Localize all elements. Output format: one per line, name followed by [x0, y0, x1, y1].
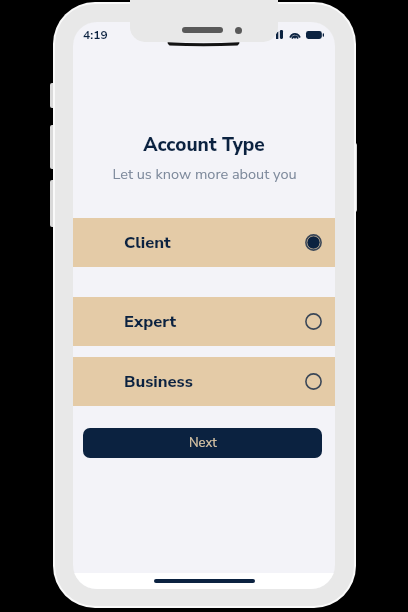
staticText: Expert — [124, 310, 177, 333]
staticText: Let us know more about you — [112, 164, 297, 184]
button[interactable]: Client — [73, 218, 335, 267]
other: Status icons — [276, 30, 324, 39]
button[interactable]: Business — [73, 357, 335, 406]
button[interactable]: Expert — [73, 297, 335, 346]
staticText: Client — [124, 231, 171, 254]
staticText: Business — [124, 370, 193, 393]
staticText: Account Type — [143, 132, 265, 158]
staticText: 4:19 — [83, 27, 108, 43]
staticText: Next — [189, 434, 217, 452]
button[interactable]: Next — [83, 428, 322, 458]
